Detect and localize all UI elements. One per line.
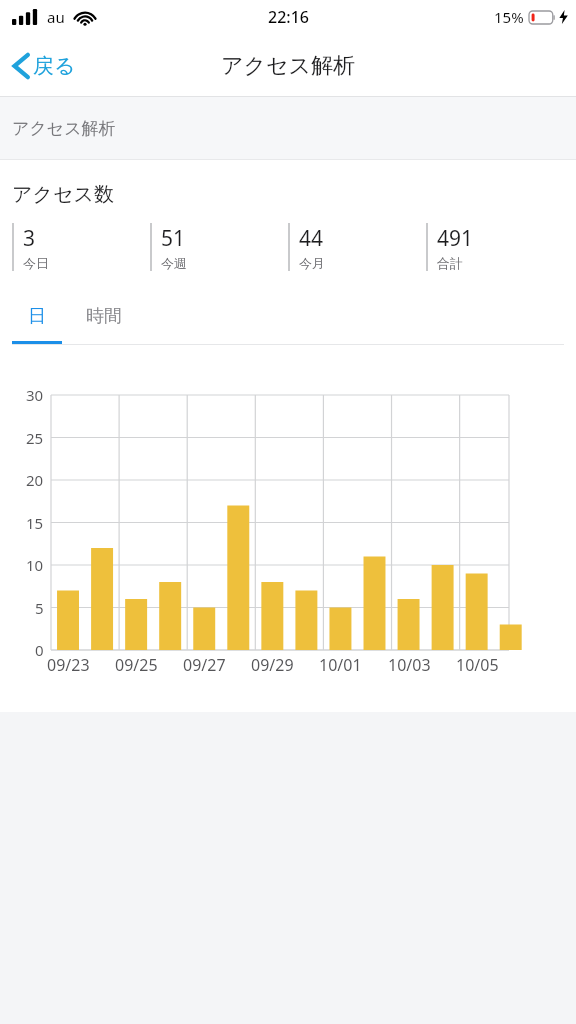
staticText: 44 (299, 224, 324, 253)
staticText: 09/29 (251, 654, 294, 676)
button[interactable]: 日 (12, 303, 62, 345)
staticText: 戻る (33, 53, 76, 79)
staticText: 09/25 (115, 654, 158, 676)
staticText: 10/05 (456, 654, 499, 676)
staticText: 10/01 (319, 654, 362, 676)
staticText: 09/27 (183, 654, 226, 676)
staticText: アクセス解析 (12, 118, 116, 139)
staticText: 5 (35, 598, 44, 618)
staticText: アクセス解析 (221, 52, 356, 80)
staticText: 22:16 (268, 6, 309, 28)
staticText: 今週 (161, 255, 187, 271)
staticText: 今月 (299, 255, 325, 271)
staticText: 3 (23, 224, 36, 253)
staticText: 30 (26, 385, 44, 405)
button[interactable]: 時間 (78, 303, 130, 345)
staticText: 10/03 (388, 654, 431, 676)
staticText: 日 (28, 305, 46, 328)
staticText: アクセス数 (12, 182, 114, 207)
staticText: 491 (437, 224, 474, 253)
staticText: 時間 (86, 305, 122, 328)
button[interactable]: 戻る (8, 46, 80, 86)
staticText: 20 (26, 470, 44, 490)
staticText: 25 (26, 428, 44, 448)
staticText: 15 (26, 513, 44, 533)
staticText: 51 (161, 224, 186, 253)
staticText: 10 (26, 555, 44, 575)
staticText: 15% (494, 7, 524, 27)
staticText: 今日 (23, 255, 49, 271)
staticText: au (47, 7, 65, 27)
staticText: 0 (35, 640, 44, 660)
staticText: 09/23 (47, 654, 90, 676)
staticText: 合計 (437, 255, 463, 271)
